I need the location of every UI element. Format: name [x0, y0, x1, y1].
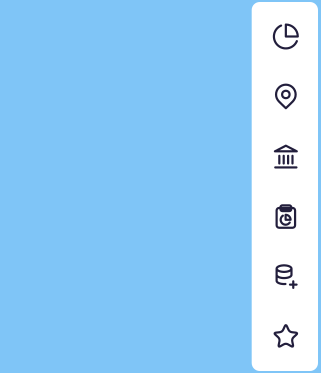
button[interactable]: Favorites [252, 306, 318, 366]
button[interactable]: Institutions [252, 126, 318, 186]
button[interactable]: Add data source [252, 246, 318, 306]
button[interactable]: Reports [252, 186, 318, 246]
button[interactable]: Locations [252, 66, 318, 126]
button[interactable]: Analytics [252, 6, 318, 66]
